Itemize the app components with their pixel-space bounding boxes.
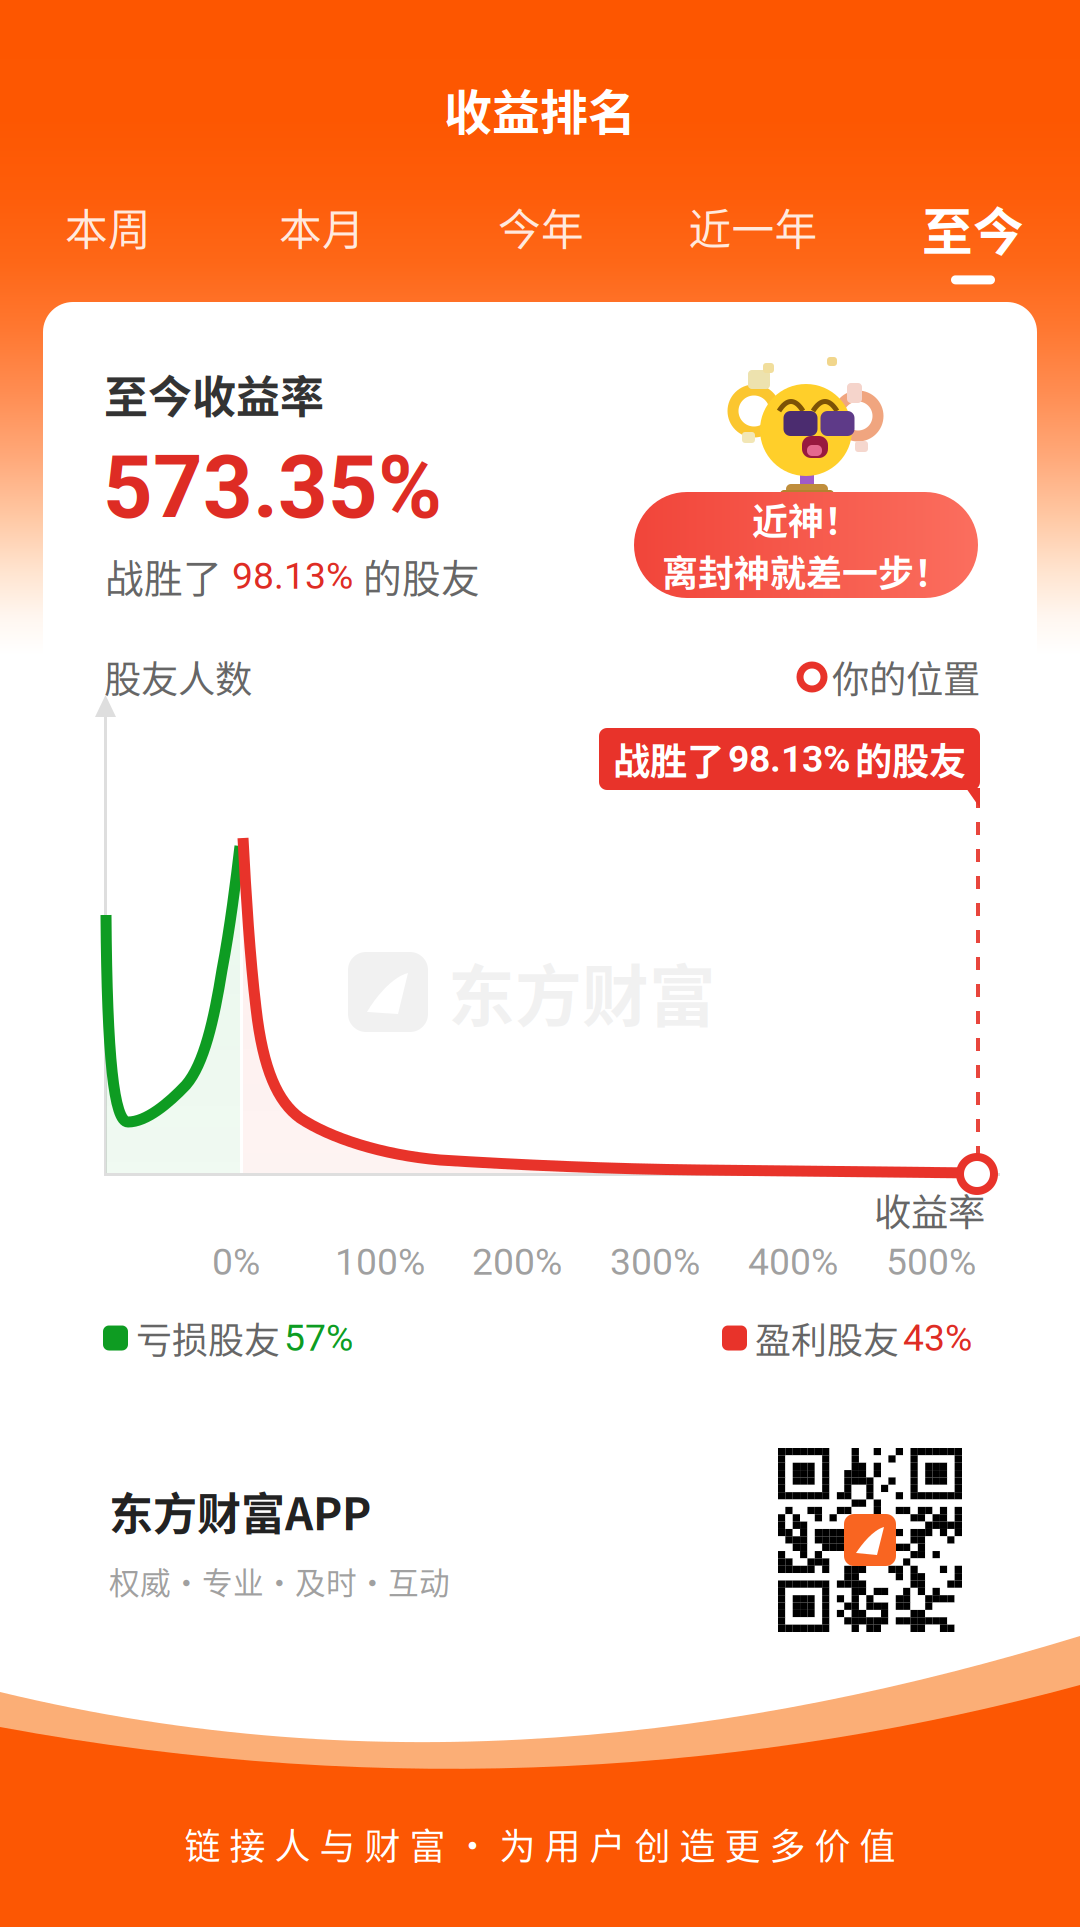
staticText: 573.35% [103, 437, 442, 539]
staticText: 200% [472, 1240, 562, 1284]
staticText: 收益率 [874, 1183, 985, 1237]
button[interactable]: 下载东方财富APP二维码 [778, 1448, 962, 1632]
staticText: 东方财富 [448, 944, 716, 1040]
staticText: 盈利股友 [755, 1312, 899, 1364]
staticText: 权威·专业·及时·互动 [109, 1559, 450, 1603]
staticText: 近神！ [752, 493, 860, 545]
staticText: 股友人数 [104, 650, 252, 704]
staticText: 东方财富APP [109, 1479, 371, 1543]
staticText: 98.13% [728, 737, 851, 781]
staticText: 亏损股友 [136, 1312, 280, 1364]
staticText: 收益排名 [444, 74, 636, 144]
staticText: 的股友 [855, 732, 966, 786]
staticText: 战胜了 [105, 548, 222, 604]
staticText: 近一年 [688, 196, 817, 258]
staticText: 今年 [498, 196, 584, 258]
staticText: 57% [284, 1316, 353, 1360]
button[interactable]: 收益排名 [444, 74, 636, 144]
button[interactable]: 近神！ [634, 492, 978, 598]
staticText: 43% [903, 1316, 972, 1360]
staticText: 本周 [65, 196, 151, 258]
staticText: 100% [335, 1240, 425, 1284]
staticText: 300% [610, 1240, 700, 1284]
staticText: 0% [212, 1240, 260, 1284]
button[interactable]: 今年 [489, 196, 593, 252]
button[interactable]: 近一年 [678, 196, 828, 252]
staticText: 链接人与财富·为用户创造更多价值 [184, 1818, 895, 1870]
staticText: 98.13% [232, 554, 353, 598]
staticText: 400% [748, 1240, 838, 1284]
staticText [824, 663, 832, 690]
button[interactable]: 至今 [909, 192, 1037, 284]
button[interactable]: 本周 [56, 196, 160, 252]
staticText: 500% [886, 1240, 976, 1284]
button[interactable]: 本月 [270, 196, 374, 252]
staticText: 的股友 [363, 548, 480, 604]
staticText: 本月 [279, 196, 365, 258]
staticText: 你的位置 [832, 650, 980, 704]
staticText: 至今收益率 [104, 362, 324, 426]
staticText: 离封神就差一步！ [662, 545, 950, 597]
staticText: 战胜了 [613, 732, 724, 786]
staticText: 至今 [922, 192, 1024, 265]
